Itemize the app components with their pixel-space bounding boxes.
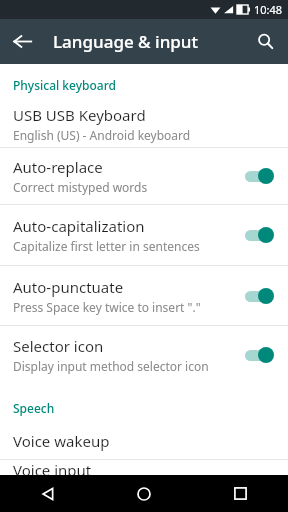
button[interactable]: Back bbox=[26, 475, 70, 512]
staticText: USB USB Keyboard bbox=[13, 105, 146, 125]
button[interactable]: Voice input bbox=[0, 460, 288, 475]
button[interactable]: Search bbox=[243, 19, 288, 64]
button[interactable]: Home bbox=[122, 475, 166, 512]
staticText: Capitalize first letter in sentences bbox=[13, 238, 200, 254]
staticText: Speech bbox=[13, 400, 55, 416]
staticText: Auto-punctuate bbox=[13, 277, 124, 297]
staticText: Selector icon bbox=[13, 336, 104, 356]
button[interactable]: Back bbox=[0, 19, 45, 64]
button[interactable]: Voice wakeup bbox=[0, 422, 288, 459]
staticText: Physical keyboard bbox=[13, 77, 116, 93]
staticText: 10:48 bbox=[254, 2, 283, 17]
staticText: Voice input bbox=[13, 460, 92, 475]
staticText: Auto-capitalization bbox=[13, 216, 145, 236]
staticText: Correct mistyped words bbox=[13, 179, 148, 195]
button[interactable]: Selector icon bbox=[0, 326, 288, 383]
staticText: Display input method selector icon bbox=[13, 358, 209, 374]
button[interactable]: Toggle setting bbox=[244, 344, 277, 366]
button[interactable]: Recent apps bbox=[218, 475, 262, 512]
staticText: Press Space key twice to insert "." bbox=[13, 299, 201, 315]
staticText: Language & input bbox=[53, 30, 199, 53]
staticText: English (US) - Android keyboard bbox=[13, 127, 191, 143]
button[interactable]: Auto-capitalization bbox=[0, 205, 288, 265]
button[interactable]: Toggle setting bbox=[244, 165, 277, 187]
button[interactable]: Auto-replace bbox=[0, 148, 288, 204]
button[interactable]: USB USB Keyboard bbox=[0, 100, 288, 147]
button[interactable]: Toggle setting bbox=[244, 285, 277, 307]
button[interactable]: Auto-punctuate bbox=[0, 266, 288, 325]
staticText: Auto-replace bbox=[13, 157, 103, 177]
staticText: Voice wakeup bbox=[13, 431, 110, 451]
button[interactable]: Toggle setting bbox=[244, 224, 277, 246]
